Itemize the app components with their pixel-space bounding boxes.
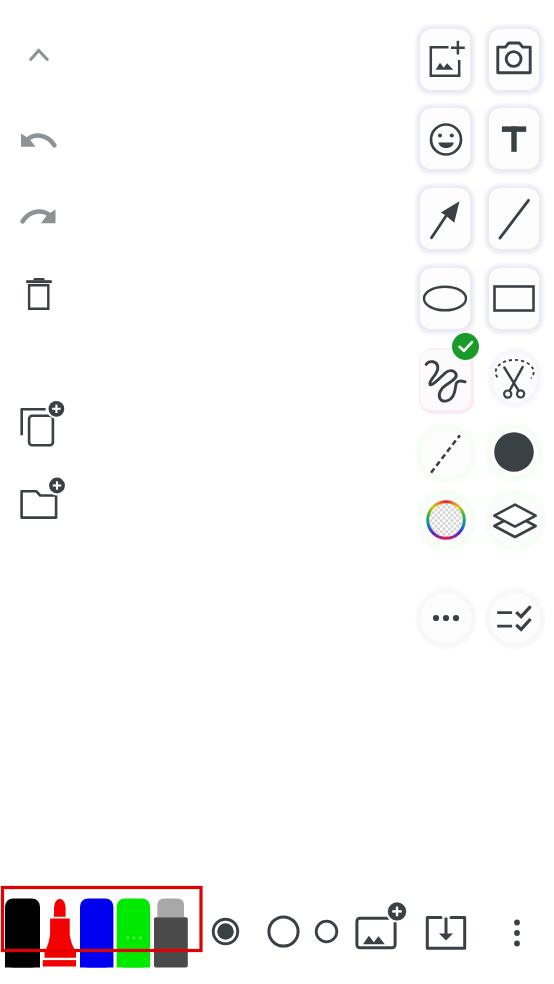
button[interactable]: Line [489,188,539,249]
button[interactable]: Pen [420,350,471,410]
button[interactable]: More options [421,593,471,643]
button[interactable]: Text [489,108,539,169]
button[interactable]: New folder [9,472,69,532]
button[interactable]: Large brush [304,909,349,954]
button[interactable]: Medium brush [261,909,306,954]
button[interactable]: Duplicate page [9,394,69,454]
button[interactable]: Delete [9,264,69,324]
button[interactable]: Arrow [420,188,470,249]
button[interactable]: Undo [9,110,69,170]
button[interactable]: Color picker [421,495,471,545]
button[interactable]: Camera [489,29,539,90]
button[interactable]: Save [420,907,472,959]
button[interactable]: More [492,908,542,958]
button[interactable]: Add image [420,29,470,90]
button[interactable]: Collapse [9,25,69,85]
button[interactable]: Small brush [203,909,248,954]
button[interactable]: Redo [9,186,69,246]
button[interactable]: Layers [490,495,540,545]
button[interactable]: Pen palette [0,884,205,984]
button[interactable]: Checklist [490,593,540,643]
button[interactable]: Brush color [490,428,538,476]
button[interactable]: Insert image [350,907,402,959]
button[interactable]: Lasso cut [493,353,537,402]
button[interactable]: Emoji [420,108,470,169]
button[interactable]: Dashed line [421,429,471,477]
button[interactable]: Ellipse [420,268,470,329]
button[interactable]: Rectangle [489,268,539,329]
